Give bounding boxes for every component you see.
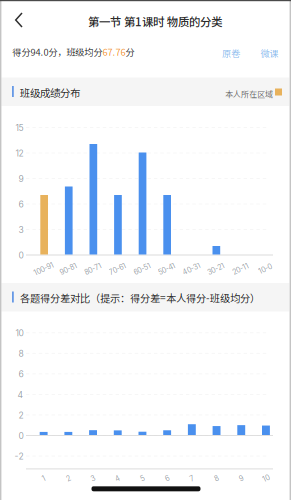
staticText: 40-31	[182, 265, 201, 273]
staticText: 原卷	[222, 46, 240, 60]
staticText: 2	[18, 410, 23, 420]
staticText: 1	[42, 474, 45, 483]
staticText: 15	[15, 123, 23, 133]
staticText: 4	[115, 474, 120, 483]
staticText: 5	[140, 474, 144, 483]
staticText: 80-71	[84, 265, 102, 273]
staticText: 第一节 第1课时 物质的分类	[88, 13, 222, 30]
staticText: 6	[18, 199, 23, 209]
staticText: 6	[165, 474, 169, 483]
staticText: 60-51	[133, 265, 151, 273]
staticText: 70-61	[109, 265, 127, 273]
button[interactable]: 返回	[3, 5, 35, 35]
staticText: 30-21	[207, 265, 225, 273]
button[interactable]: 微课	[256, 44, 282, 62]
staticText: 0	[18, 431, 23, 441]
staticText: 20-11	[232, 265, 249, 273]
staticText: 3	[91, 474, 95, 483]
button[interactable]: 原卷	[218, 44, 244, 62]
staticText: 7	[190, 474, 194, 483]
staticText: 4	[17, 390, 23, 400]
staticText: 90-81	[59, 265, 77, 273]
staticText: 班级成绩分布	[20, 85, 80, 100]
staticText: 3	[18, 225, 23, 235]
staticText: 10	[15, 328, 23, 338]
staticText: 10-0	[258, 265, 272, 273]
staticText: 本人所在区域	[225, 88, 273, 100]
staticText: 6	[18, 369, 23, 379]
staticText: 9	[18, 174, 23, 184]
staticText: 得分94.0分，班级均分	[12, 45, 102, 58]
staticText: -2	[14, 451, 23, 461]
staticText: 10	[262, 474, 269, 483]
staticText: 100-91	[33, 265, 54, 273]
staticText: 50-41	[158, 265, 176, 273]
staticText: 9	[239, 474, 243, 483]
staticText: 0	[18, 250, 23, 260]
staticText: 2	[66, 474, 70, 483]
staticText: 8	[215, 474, 219, 483]
staticText: 分	[125, 45, 134, 58]
staticText: 微课	[260, 46, 278, 60]
staticText: 12	[15, 148, 23, 158]
staticText: 67.76	[102, 45, 125, 58]
staticText: 各题得分差对比（提示：得分差=本人得分-班级均分）	[20, 290, 260, 305]
staticText: 8	[18, 348, 23, 359]
